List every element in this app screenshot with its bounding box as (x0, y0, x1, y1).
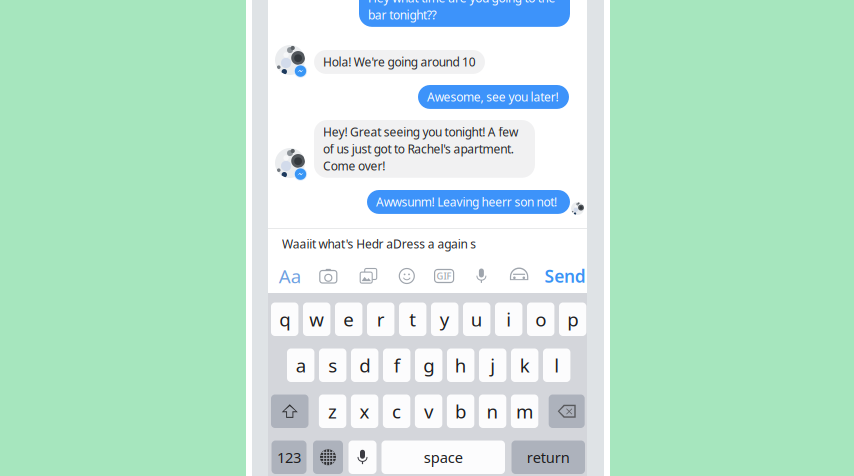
button[interactable]: s (319, 348, 346, 382)
staticText: b (455, 399, 466, 424)
button[interactable]: 123 (271, 440, 306, 474)
button[interactable]: GIF (429, 265, 459, 287)
button[interactable]: c (383, 394, 410, 428)
button[interactable]: q (271, 302, 298, 336)
button[interactable]: i (495, 302, 522, 336)
staticText: f (394, 353, 400, 378)
button[interactable]: space (381, 440, 505, 474)
button[interactable]: a (287, 348, 314, 382)
staticText: m (516, 399, 533, 424)
button[interactable]: Delete (549, 394, 585, 428)
staticText: 123 (277, 447, 301, 467)
staticText: u (471, 307, 483, 332)
button[interactable]: m (511, 394, 538, 428)
staticText: h (455, 353, 467, 378)
staticText: t (409, 307, 416, 332)
button[interactable]: j (479, 348, 506, 382)
staticText: y (440, 307, 450, 332)
staticText: n (487, 399, 499, 424)
staticText: space (424, 447, 463, 467)
staticText: GIF (437, 270, 452, 282)
staticText: p (567, 307, 578, 332)
staticText: l (554, 353, 559, 378)
button[interactable]: p (559, 302, 586, 336)
button[interactable]: w (303, 302, 330, 336)
staticText: Awwsunm! Leaving heerr son not! (376, 194, 557, 210)
staticText: a (296, 353, 306, 378)
button[interactable]: l (543, 348, 570, 382)
button[interactable]: d (351, 348, 378, 382)
staticText: e (343, 307, 354, 332)
staticText: z (328, 399, 337, 424)
button[interactable]: o (527, 302, 554, 336)
staticText: s (328, 353, 337, 378)
staticText: Awesome, see you later! (427, 89, 559, 105)
button[interactable]: Next keyboard (313, 440, 343, 474)
button[interactable]: b (447, 394, 474, 428)
staticText: r (377, 307, 385, 332)
button[interactable]: Voice message (466, 265, 496, 287)
staticText: g (423, 353, 434, 378)
staticText: x (360, 399, 370, 424)
button[interactable]: Transportation (504, 265, 534, 287)
staticText: v (424, 399, 433, 424)
button[interactable]: k (511, 348, 538, 382)
button[interactable]: Photos (354, 265, 384, 287)
button[interactable]: Stickers (392, 265, 422, 287)
button[interactable]: r (367, 302, 394, 336)
button[interactable]: Dictation (348, 440, 376, 474)
button[interactable]: z (319, 394, 346, 428)
button[interactable]: return (511, 440, 585, 474)
staticText: Hey! Great seeing you tonight! A few of … (323, 124, 518, 174)
button[interactable]: Text formatting (275, 265, 305, 287)
button[interactable]: v (415, 394, 442, 428)
button[interactable]: t (399, 302, 426, 336)
button[interactable]: u (463, 302, 490, 336)
staticText: Waaiit what's Hedr aDress a again s (282, 236, 476, 252)
button[interactable]: Camera (313, 265, 343, 287)
button[interactable]: f (383, 348, 410, 382)
button[interactable]: g (415, 348, 442, 382)
staticText: return (527, 447, 570, 467)
staticText: Aa (279, 264, 301, 288)
button[interactable]: e (335, 302, 362, 336)
button[interactable]: Shift (271, 394, 308, 428)
staticText: Send (544, 264, 586, 287)
button[interactable]: x (351, 394, 378, 428)
staticText: Hey what time are you going to the bar t… (368, 0, 555, 23)
button[interactable]: y (431, 302, 458, 336)
staticText: d (359, 353, 370, 378)
staticText: q (279, 307, 290, 332)
staticText: i (506, 307, 511, 332)
staticText: c (392, 399, 401, 424)
button[interactable]: Send (544, 266, 586, 286)
staticText: o (535, 307, 546, 332)
staticText: Hola! We're going around 10 (323, 54, 476, 70)
staticText: w (309, 307, 324, 332)
staticText: j (490, 353, 495, 378)
button[interactable]: h (447, 348, 474, 382)
button[interactable]: n (479, 394, 506, 428)
staticText: k (520, 353, 530, 378)
